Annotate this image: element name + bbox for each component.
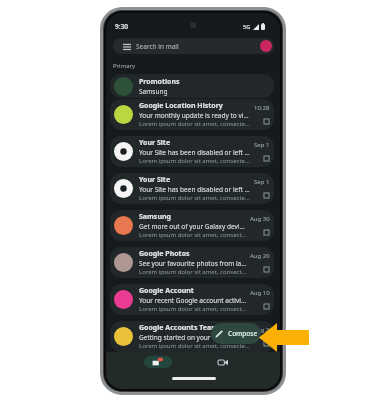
staticText: Your recent Google account activity revi… xyxy=(139,296,247,305)
staticText: Compose xyxy=(228,329,258,338)
staticText: Get more out of your Galaxy device today xyxy=(139,222,247,231)
staticText: Lorem ipsum dolor sit amet, consectetur … xyxy=(139,120,251,128)
staticText: Promotions xyxy=(139,77,180,87)
staticText: Aug 30 xyxy=(250,215,270,223)
staticText: Google Location History xyxy=(139,101,223,111)
button[interactable]: Google Accounts Team xyxy=(110,321,274,352)
staticText: Samsung xyxy=(139,87,168,96)
staticText: Google Photos xyxy=(139,249,190,259)
button[interactable]: Promotions xyxy=(110,74,274,98)
button[interactable]: Google Location History xyxy=(110,99,274,130)
staticText: Sep 1 xyxy=(254,141,270,149)
staticText: Lorem ipsum dolor sit amet, consectetur … xyxy=(139,157,251,165)
button[interactable]: Google Account xyxy=(110,284,274,315)
staticText: Lorem ipsum dolor sit amet, consectetur … xyxy=(139,231,247,239)
staticText: Google Account xyxy=(139,286,194,296)
staticText: Lorem ipsum dolor sit amet, consectetur … xyxy=(139,194,251,202)
staticText: Your Site xyxy=(139,138,171,148)
button[interactable]: Menu xyxy=(113,38,274,54)
staticText: Sep 1 xyxy=(254,178,270,186)
other: Menu xyxy=(123,43,131,50)
staticText: Getting started on your Google account xyxy=(139,333,250,342)
staticText: 10:28 xyxy=(254,104,270,112)
staticText: 5G xyxy=(243,23,251,30)
staticText: Your Site has been disabled or left offl… xyxy=(139,185,251,194)
staticText: Primary xyxy=(113,62,136,70)
staticText: See your favourite photos from last year xyxy=(139,259,247,268)
staticText: Lorem ipsum dolor sit amet, consectetur … xyxy=(139,268,247,276)
button[interactable]: Your Site xyxy=(110,173,274,204)
staticText: Your Site xyxy=(139,175,171,185)
staticText: Aug 2 xyxy=(253,326,270,334)
button[interactable]: Google Photos xyxy=(110,247,274,278)
staticText: Your Site has been disabled or left offl… xyxy=(139,148,251,157)
staticText: Your monthly update is ready to view now xyxy=(139,111,251,120)
button[interactable]: Your Site xyxy=(110,136,274,167)
button[interactable]: Mail xyxy=(144,356,172,368)
button[interactable]: Meet xyxy=(211,356,235,368)
staticText: Search in mail xyxy=(136,42,179,51)
staticText: 9:30 xyxy=(115,22,128,31)
staticText: Lorem ipsum dolor sit amet, consectetur … xyxy=(139,305,247,313)
staticText: Aug 20 xyxy=(250,252,270,260)
button[interactable]: Account xyxy=(260,40,272,52)
staticText: Samsung xyxy=(139,212,171,222)
staticText: Aug 10 xyxy=(250,289,270,297)
staticText: Google Accounts Team xyxy=(139,323,218,333)
button[interactable]: Compose xyxy=(211,323,261,344)
button[interactable]: Samsung xyxy=(110,210,274,241)
staticText: Lorem ipsum dolor sit amet, consectetur … xyxy=(139,342,250,350)
